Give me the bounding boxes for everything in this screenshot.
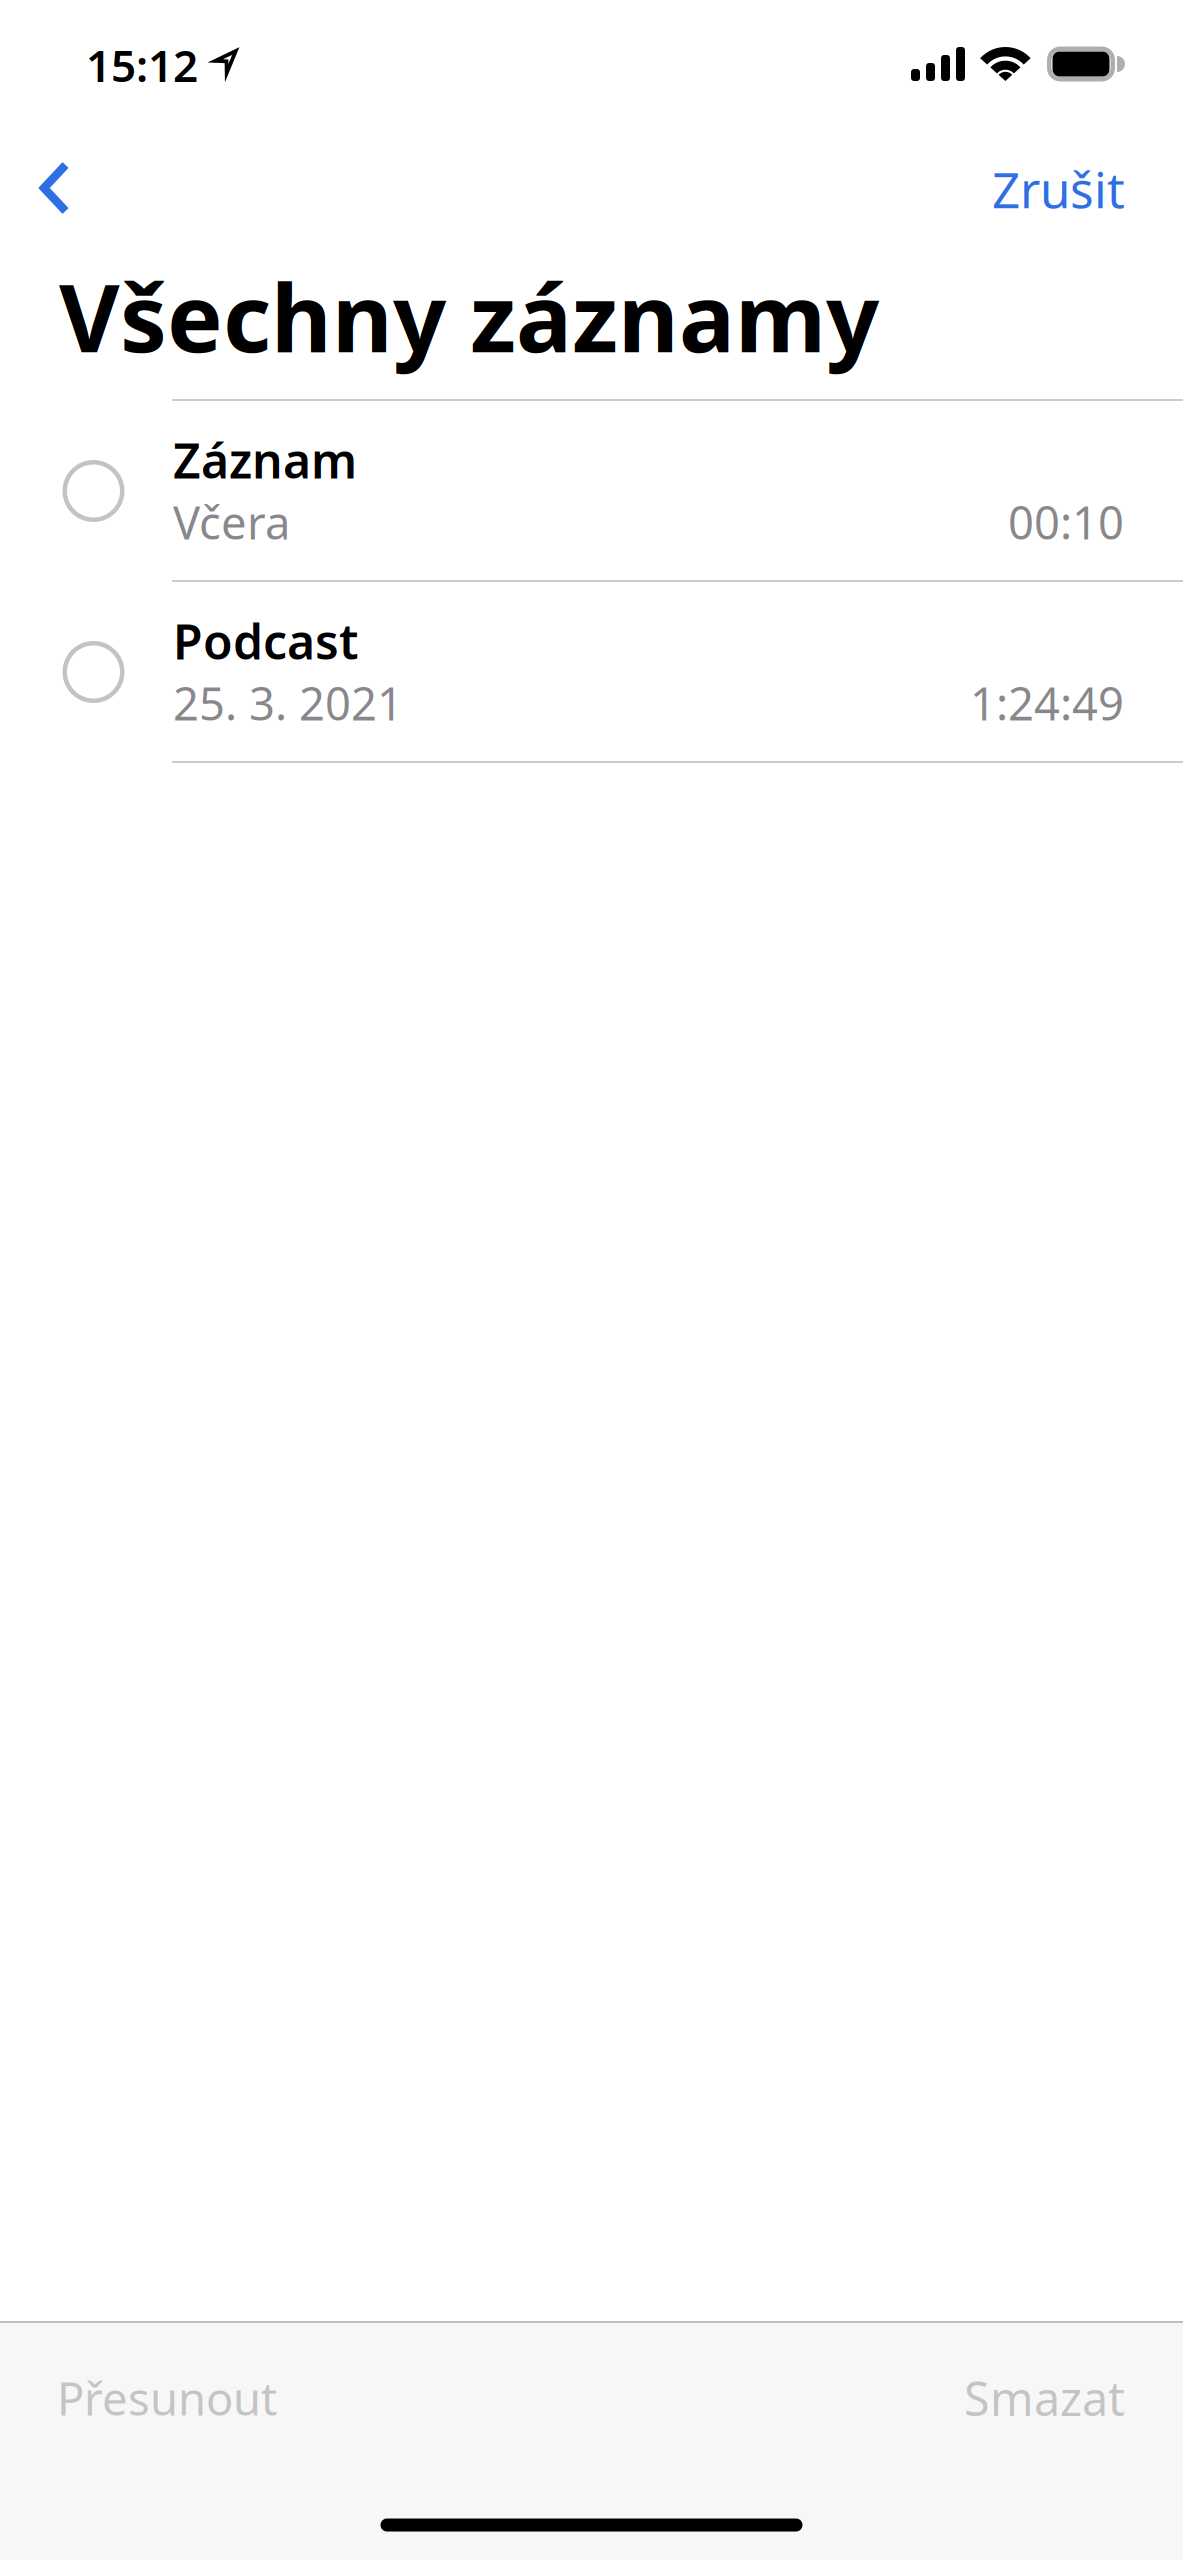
button[interactable]: Přesunout bbox=[57, 2343, 317, 2453]
staticText: Záznam bbox=[173, 428, 357, 492]
staticText: 00:10 bbox=[1008, 492, 1124, 552]
staticText: Přesunout bbox=[57, 2368, 277, 2428]
staticText: Smazat bbox=[964, 2367, 1125, 2429]
staticText: Zrušit bbox=[992, 156, 1125, 222]
staticText: Včera bbox=[173, 492, 290, 552]
staticText: 25. 3. 2021 bbox=[173, 673, 403, 733]
button[interactable]: Back bbox=[0, 133, 115, 243]
staticText: Všechny záznamy bbox=[59, 254, 879, 378]
staticText: Podcast bbox=[173, 609, 358, 673]
button[interactable]: Podcast bbox=[0, 582, 1183, 763]
button[interactable]: Zrušit bbox=[925, 134, 1125, 244]
button[interactable]: Záznam bbox=[0, 401, 1183, 582]
button[interactable]: Smazat bbox=[905, 2343, 1125, 2453]
staticText: 1:24:49 bbox=[970, 673, 1124, 733]
staticText: 15:12 bbox=[86, 36, 198, 94]
